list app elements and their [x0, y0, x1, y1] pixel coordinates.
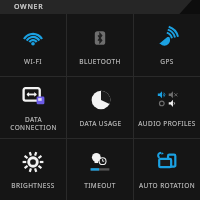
staticText: AUTO ROTATION [139, 181, 195, 190]
staticText: DATA CONNECTION [10, 115, 57, 132]
staticText: OWNER [14, 2, 44, 12]
button[interactable]: AUDIO PROFILES [134, 77, 200, 138]
staticText: BLUETOOTH [79, 57, 121, 66]
staticText: BRIGHTNESS [11, 181, 55, 190]
button[interactable]: DATA USAGE [67, 77, 133, 138]
staticText: TIMEOUT [84, 181, 116, 190]
staticText: AUDIO PROFILES [138, 119, 196, 128]
button[interactable]: AUTO ROTATION [134, 139, 200, 200]
button[interactable]: GPS [134, 14, 200, 76]
button[interactable]: BLUETOOTH [67, 14, 133, 76]
staticText: DATA USAGE [79, 119, 122, 128]
button[interactable]: BRIGHTNESS [0, 139, 66, 200]
staticText: WI-FI [24, 57, 42, 66]
button[interactable]: DATA CONNECTION [0, 77, 66, 138]
staticText: GPS [160, 57, 174, 66]
button[interactable]: TIMEOUT [67, 139, 133, 200]
button[interactable]: WI-FI [0, 14, 66, 76]
